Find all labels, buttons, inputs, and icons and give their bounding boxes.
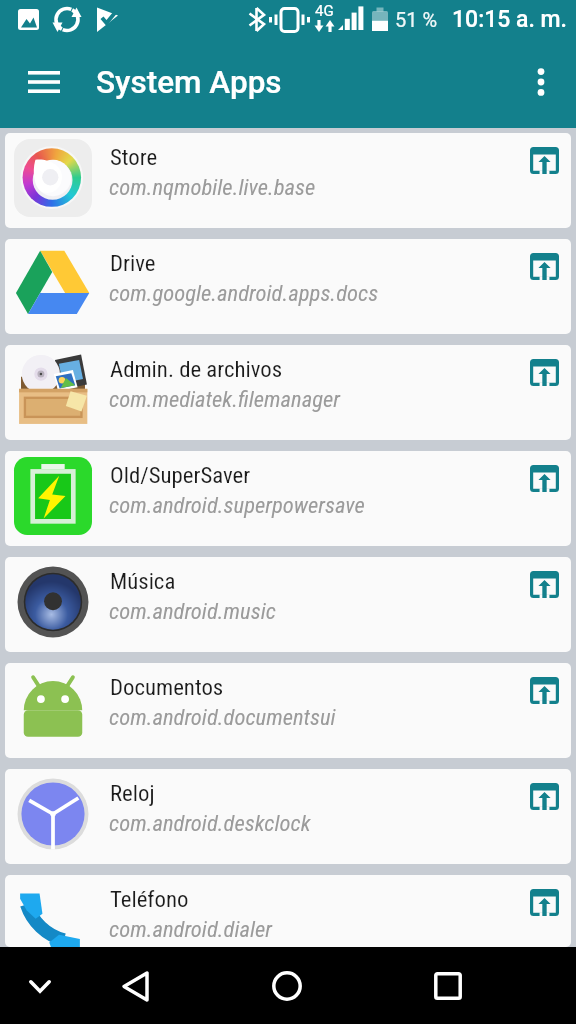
button[interactable]: Launch app	[521, 879, 567, 925]
button[interactable]: Hide keyboard	[12, 961, 68, 1011]
button[interactable]: Launch app	[521, 455, 567, 501]
staticText: com.android.music	[109, 598, 521, 624]
staticText: com.android.dialer	[109, 916, 521, 942]
button[interactable]: Old/SuperSaver	[5, 451, 571, 546]
button[interactable]: Launch app	[521, 349, 567, 395]
staticText: com.android.documentsui	[109, 704, 521, 730]
button[interactable]: Launch app	[521, 137, 567, 183]
button[interactable]: Store	[5, 133, 571, 228]
button[interactable]: Drive	[5, 239, 571, 334]
button[interactable]: Open navigation drawer	[21, 59, 67, 105]
staticText: Admin. de archivos	[110, 356, 522, 383]
staticText: Reloj	[110, 780, 522, 807]
button[interactable]: Reloj	[5, 769, 571, 864]
staticText: 4G	[315, 2, 334, 20]
staticText: com.android.deskclock	[109, 810, 521, 836]
button[interactable]: Home	[255, 958, 319, 1014]
staticText: 10:15 a. m.	[452, 6, 567, 33]
staticText: Documentos	[110, 674, 522, 701]
button[interactable]: Documentos	[5, 663, 571, 758]
button[interactable]: Launch app	[521, 561, 567, 607]
button[interactable]: Teléfono	[5, 875, 571, 947]
staticText: Store	[110, 144, 522, 171]
button[interactable]: Launch app	[521, 667, 567, 713]
staticText: com.google.android.apps.docs	[109, 280, 521, 306]
staticText: Música	[110, 568, 522, 595]
button[interactable]: Launch app	[521, 773, 567, 819]
staticText: Drive	[110, 250, 522, 277]
button[interactable]: More options	[518, 59, 564, 105]
staticText: Teléfono	[110, 886, 522, 913]
staticText: com.mediatek.filemanager	[109, 386, 521, 412]
button[interactable]: Launch app	[521, 243, 567, 289]
button[interactable]: Recent apps	[416, 958, 480, 1014]
button[interactable]: Back	[103, 958, 167, 1014]
staticText: System Apps	[96, 64, 282, 101]
button[interactable]: Música	[5, 557, 571, 652]
staticText: com.android.superpowersave	[109, 492, 521, 518]
staticText: Old/SuperSaver	[110, 462, 522, 489]
staticText: com.nqmobile.live.base	[109, 174, 521, 200]
staticText: 51 %	[395, 8, 438, 31]
button[interactable]: Admin. de archivos	[5, 345, 571, 440]
